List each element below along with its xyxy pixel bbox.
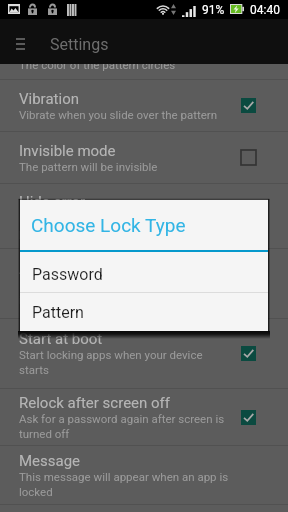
staticText: Relock after screen off [19, 394, 171, 412]
staticText: Settings [50, 35, 109, 54]
staticText: Errors will be hidden when you draw the … [19, 211, 229, 240]
staticText: 04:40 [250, 3, 280, 17]
staticText: Ask for a password again after screen is… [19, 412, 229, 441]
button[interactable]: Invisible mode [0, 132, 288, 183]
button[interactable]: Message [0, 446, 288, 504]
staticText: This message will appear when an app is … [19, 470, 229, 499]
button[interactable]: Start at boot [0, 319, 288, 388]
staticText: Message [19, 452, 81, 470]
button[interactable]: Pattern [20, 293, 268, 331]
button[interactable]: Auto lock [0, 249, 288, 318]
staticText: Invisible mode [19, 142, 116, 160]
button[interactable]: Password [20, 252, 268, 292]
staticText: 91% [202, 3, 225, 17]
staticText: Lock apps automatically after the screen… [19, 278, 229, 307]
staticText: The pattern will be invisible [19, 160, 158, 173]
button[interactable]: Hide error [0, 184, 288, 248]
staticText: The color of the pattern circles [19, 58, 176, 71]
staticText: Start at boot [19, 330, 103, 348]
staticText: Vibrate when you slide over the pattern [19, 108, 218, 121]
staticText: Choose Lock Type [31, 214, 186, 236]
button[interactable]: Relock after screen off [0, 389, 288, 445]
staticText: Pattern [32, 303, 84, 322]
staticText: Hide error [19, 193, 86, 211]
staticText: Start locking apps when your device star… [19, 348, 229, 377]
staticText: Auto lock [19, 260, 82, 278]
button[interactable]: Vibration [0, 80, 288, 131]
staticText: Vibration [19, 90, 79, 108]
staticText: Password [32, 265, 103, 284]
button[interactable]: Open navigation drawer [0, 24, 40, 64]
